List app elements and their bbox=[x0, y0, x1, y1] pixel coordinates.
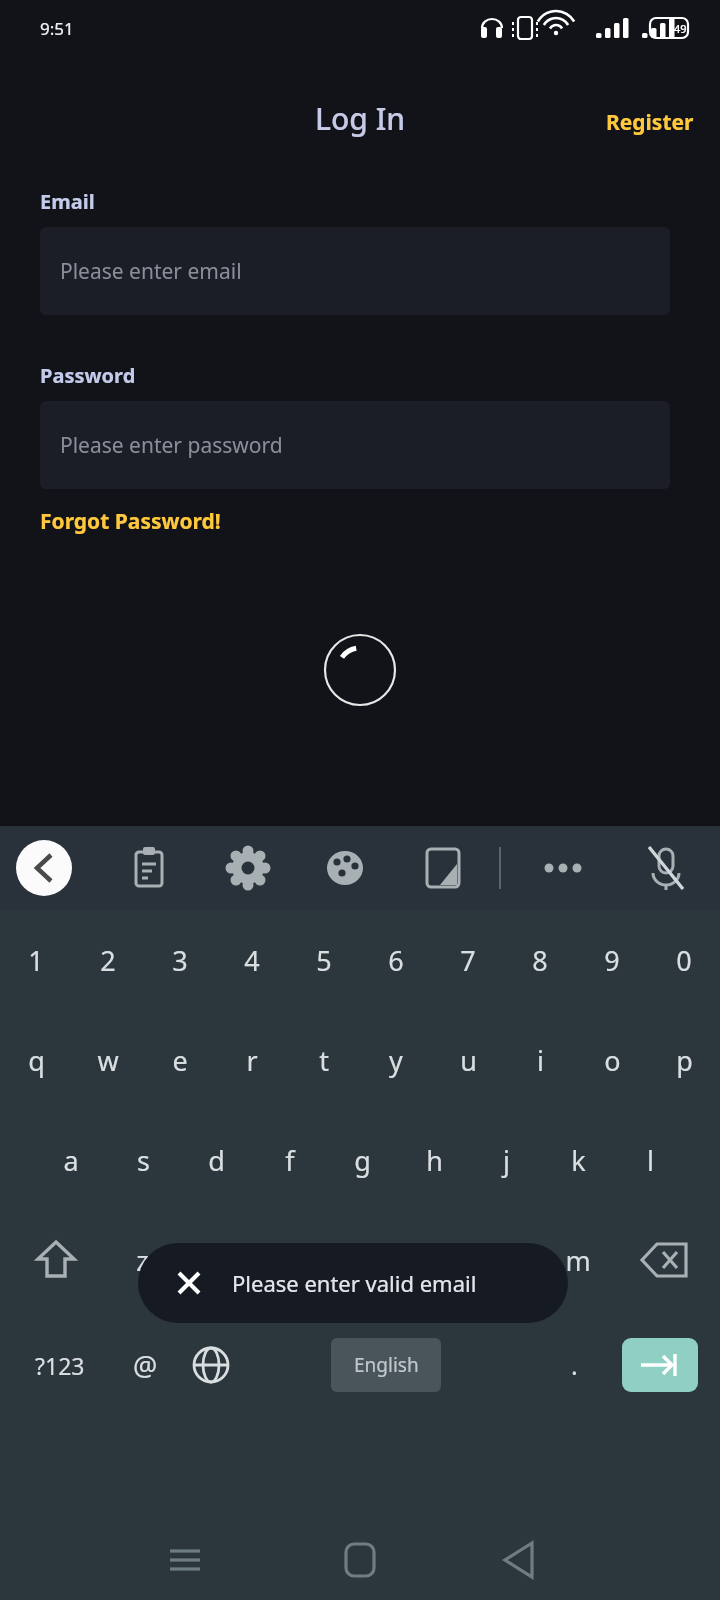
staticText: @ bbox=[133, 1347, 158, 1384]
button[interactable]: Register bbox=[594, 104, 720, 141]
button[interactable]: g bbox=[326, 1110, 398, 1210]
button[interactable]: e bbox=[144, 1010, 216, 1110]
button[interactable]: q bbox=[0, 1010, 72, 1110]
button[interactable]: c bbox=[250, 1210, 322, 1310]
staticText: w bbox=[97, 1042, 119, 1079]
staticText: c bbox=[280, 1242, 293, 1279]
staticText: English bbox=[354, 1352, 419, 1378]
button[interactable]: f bbox=[253, 1110, 326, 1210]
button[interactable]: d bbox=[180, 1110, 253, 1210]
button[interactable]: z bbox=[106, 1210, 178, 1310]
staticText: p bbox=[676, 1042, 693, 1079]
staticText: 9:51 bbox=[40, 17, 74, 40]
button[interactable]: w bbox=[72, 1010, 144, 1110]
button[interactable]: Please enter valid email bbox=[138, 1243, 568, 1323]
button[interactable]: o bbox=[576, 1010, 648, 1110]
button[interactable]: b bbox=[395, 1210, 468, 1310]
staticText: 2 bbox=[100, 942, 116, 979]
staticText: i bbox=[537, 1042, 544, 1079]
button[interactable]: Home bbox=[327, 1527, 393, 1593]
button[interactable]: Enter bbox=[622, 1338, 698, 1392]
button[interactable]: Back bbox=[486, 1527, 552, 1593]
staticText: f bbox=[285, 1142, 295, 1179]
button[interactable]: . bbox=[544, 1315, 604, 1415]
staticText: 9 bbox=[604, 942, 620, 979]
staticText: n bbox=[496, 1242, 513, 1279]
button[interactable]: Change language bbox=[178, 1315, 244, 1415]
button[interactable]: English bbox=[331, 1338, 441, 1392]
staticText: l bbox=[647, 1142, 654, 1179]
button[interactable]: k bbox=[542, 1110, 614, 1210]
button[interactable]: a bbox=[34, 1110, 107, 1210]
button[interactable]: 8 bbox=[504, 910, 576, 1010]
button[interactable]: l bbox=[614, 1110, 686, 1210]
button[interactable]: Please enter email bbox=[40, 227, 670, 315]
button[interactable]: Microphone off bbox=[638, 840, 694, 896]
button[interactable]: Settings bbox=[220, 840, 276, 896]
staticText: ?123 bbox=[35, 1350, 85, 1381]
button[interactable]: 3 bbox=[144, 910, 216, 1010]
button[interactable]: 9 bbox=[576, 910, 648, 1010]
button[interactable]: Forgot Password! bbox=[40, 503, 221, 540]
button[interactable]: 0 bbox=[648, 910, 720, 1010]
button[interactable]: 2 bbox=[72, 910, 144, 1010]
staticText: t bbox=[319, 1042, 329, 1079]
button[interactable]: s bbox=[107, 1110, 180, 1210]
button[interactable]: Recent apps bbox=[152, 1527, 218, 1593]
button[interactable]: @ bbox=[110, 1315, 180, 1415]
button[interactable]: r bbox=[216, 1010, 288, 1110]
staticText: . bbox=[571, 1348, 578, 1382]
button[interactable]: More bbox=[535, 840, 591, 896]
staticText: g bbox=[354, 1142, 371, 1179]
staticText: s bbox=[137, 1142, 150, 1179]
button[interactable]: Backspace bbox=[608, 1210, 720, 1310]
staticText: Please enter password bbox=[60, 431, 283, 460]
button[interactable]: j bbox=[470, 1110, 542, 1210]
staticText: Password bbox=[40, 362, 136, 389]
button[interactable]: Please enter password bbox=[40, 401, 670, 489]
staticText: 8 bbox=[532, 942, 548, 979]
staticText: m bbox=[565, 1242, 591, 1279]
staticText: e bbox=[172, 1042, 188, 1079]
button[interactable]: v bbox=[322, 1210, 395, 1310]
button[interactable]: h bbox=[398, 1110, 470, 1210]
button[interactable]: x bbox=[178, 1210, 250, 1310]
button[interactable]: Shift bbox=[0, 1210, 112, 1310]
staticText: x bbox=[207, 1242, 222, 1279]
staticText: j bbox=[503, 1142, 510, 1179]
button[interactable]: m bbox=[541, 1210, 614, 1310]
staticText: v bbox=[352, 1242, 366, 1279]
staticText: 7 bbox=[460, 942, 476, 979]
staticText: y bbox=[389, 1042, 403, 1079]
staticText: d bbox=[208, 1142, 225, 1179]
button[interactable]: ?123 bbox=[10, 1315, 110, 1415]
staticText: q bbox=[28, 1042, 45, 1079]
staticText: k bbox=[571, 1142, 586, 1179]
button[interactable]: y bbox=[360, 1010, 432, 1110]
staticText: o bbox=[604, 1042, 621, 1079]
staticText: 1 bbox=[28, 942, 44, 979]
button[interactable]: Clipboard bbox=[121, 840, 177, 896]
button[interactable]: Log In bbox=[307, 94, 414, 143]
staticText: 5 bbox=[316, 942, 332, 979]
button[interactable]: Theme bbox=[317, 840, 373, 896]
button[interactable]: 4 bbox=[216, 910, 288, 1010]
button[interactable]: Resize bbox=[415, 840, 471, 896]
button[interactable]: Back bbox=[16, 840, 72, 896]
staticText: Email bbox=[40, 188, 95, 215]
staticText: b bbox=[423, 1242, 440, 1279]
button[interactable]: 1 bbox=[0, 910, 72, 1010]
staticText: h bbox=[426, 1142, 443, 1179]
button[interactable]: 6 bbox=[360, 910, 432, 1010]
button[interactable]: 7 bbox=[432, 910, 504, 1010]
staticText: u bbox=[460, 1042, 477, 1079]
button[interactable]: t bbox=[288, 1010, 360, 1110]
staticText: Please enter valid email bbox=[232, 1268, 477, 1298]
button[interactable]: 5 bbox=[288, 910, 360, 1010]
staticText: a bbox=[63, 1142, 79, 1179]
button[interactable]: u bbox=[432, 1010, 504, 1110]
button[interactable]: i bbox=[504, 1010, 576, 1110]
button[interactable]: p bbox=[648, 1010, 720, 1110]
staticText: 3 bbox=[172, 942, 188, 979]
button[interactable]: n bbox=[468, 1210, 541, 1310]
